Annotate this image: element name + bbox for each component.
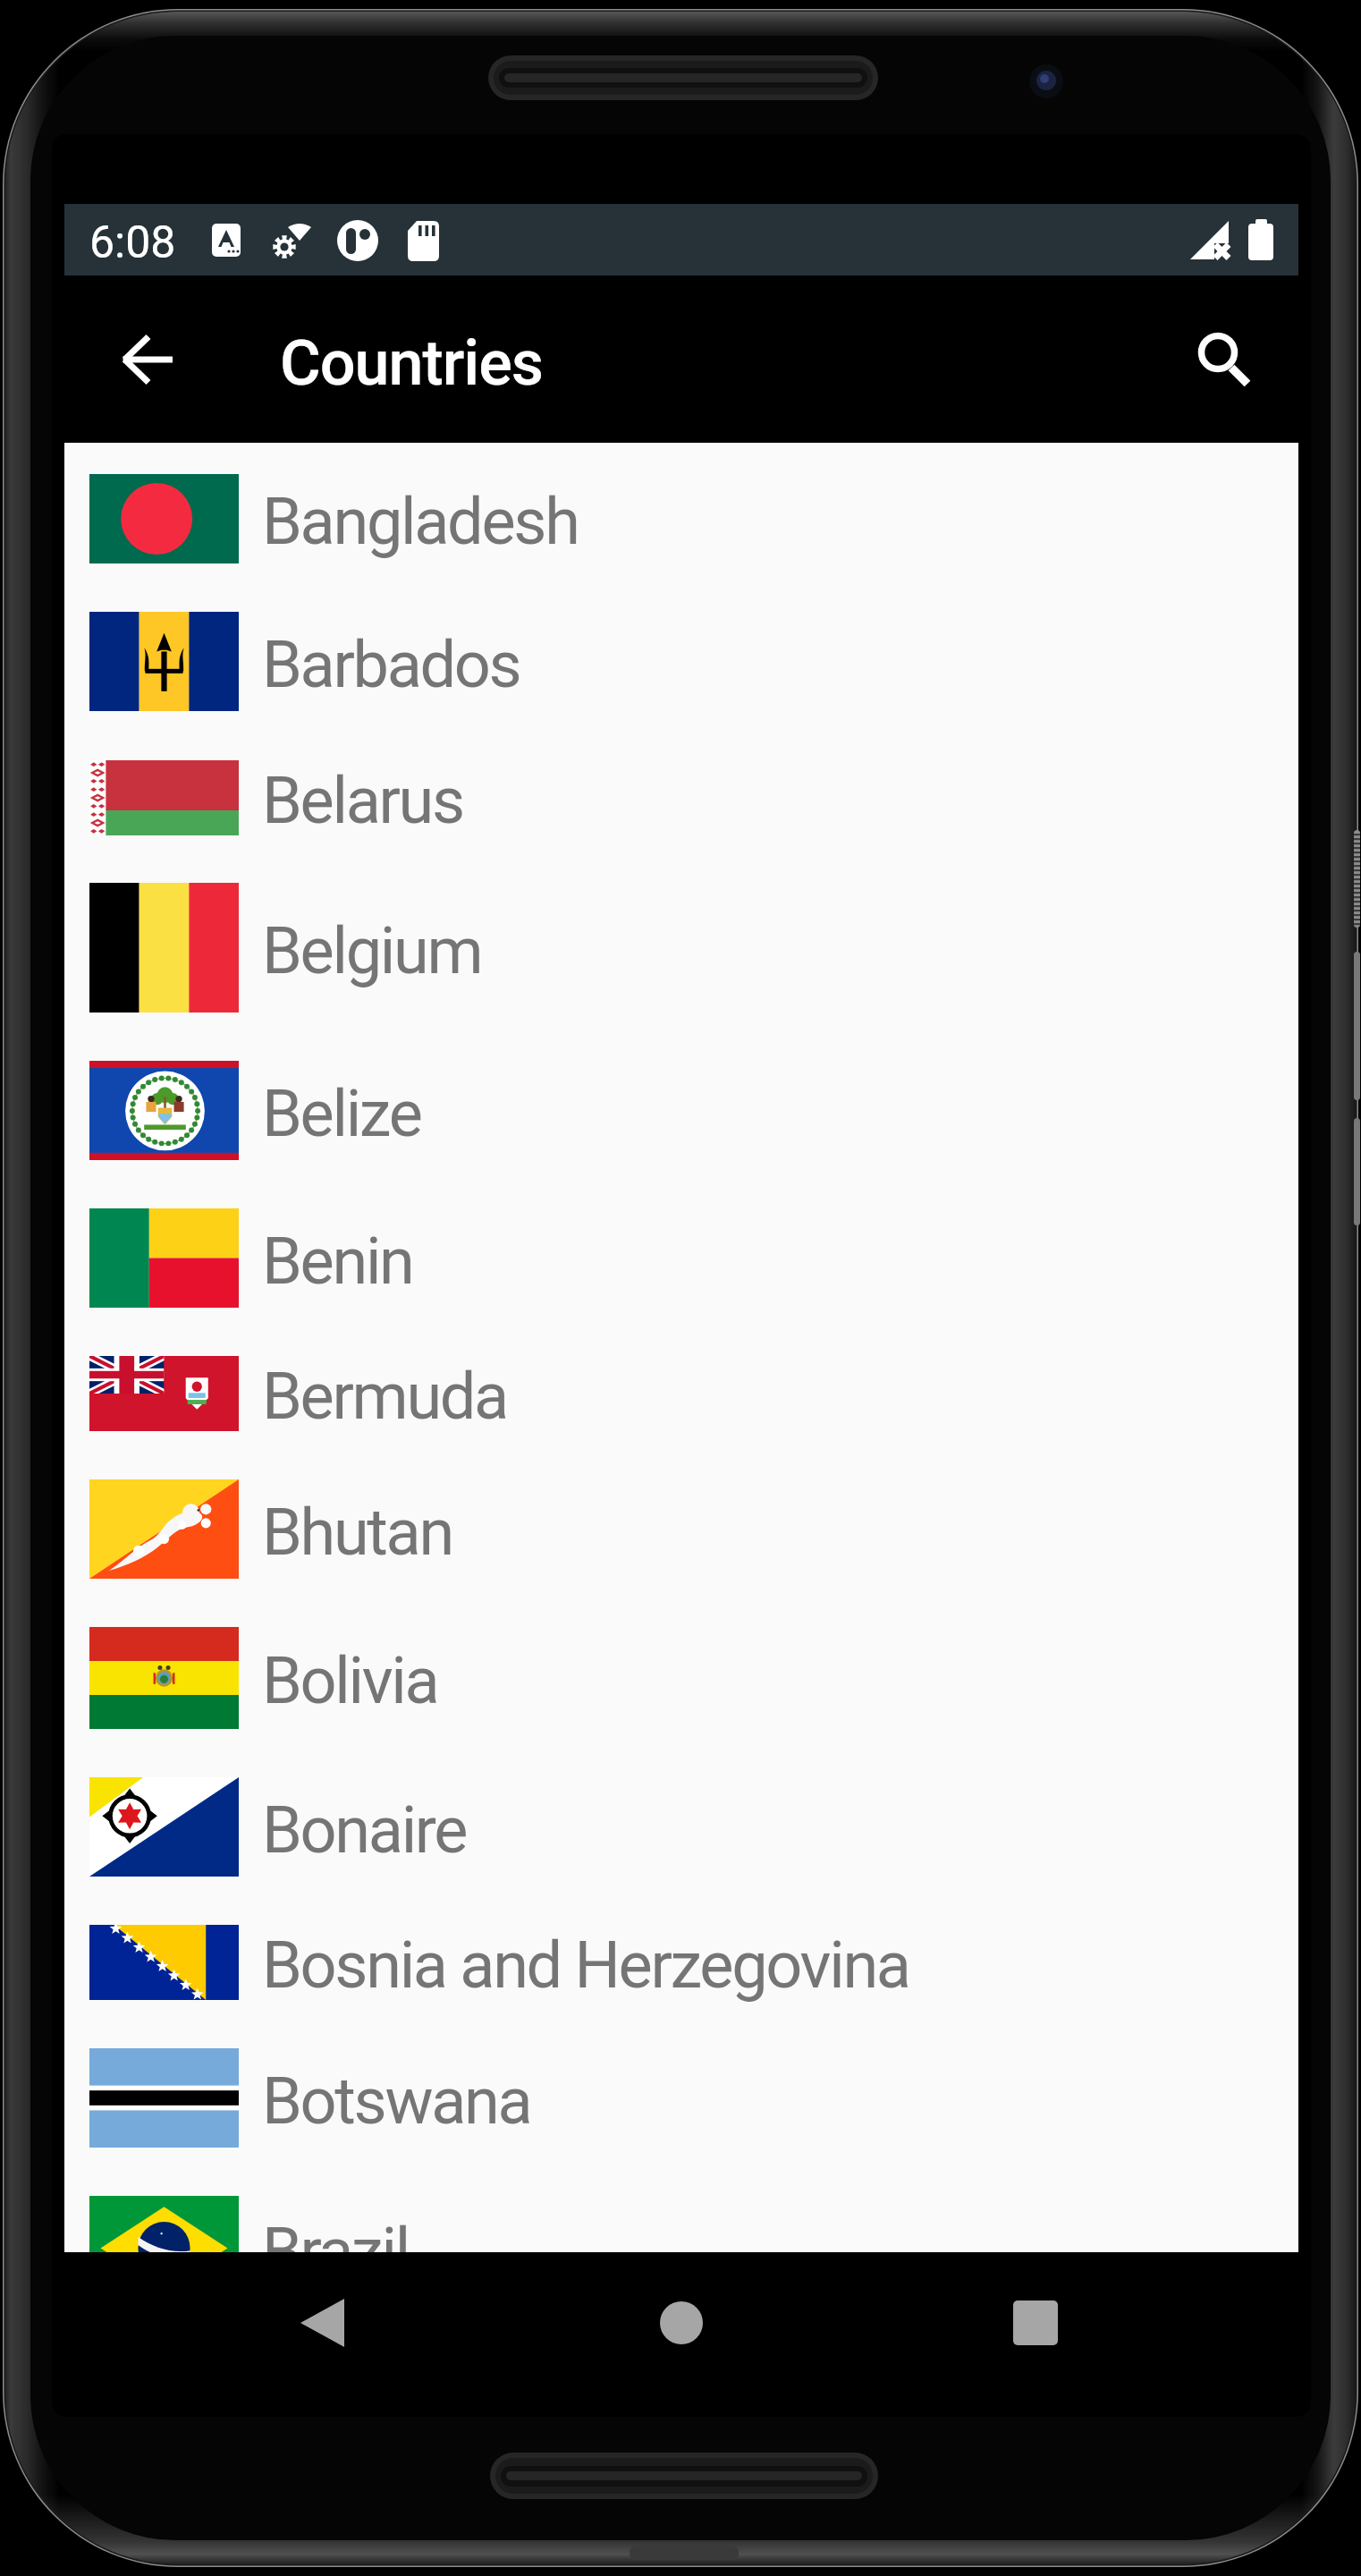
staticText: Botswana (262, 2063, 531, 2139)
button[interactable]: Belize (64, 1037, 1298, 1184)
button[interactable]: Recent apps (982, 2269, 1089, 2377)
button[interactable]: Bolivia (64, 1603, 1298, 1753)
button[interactable]: Bangladesh (64, 450, 1298, 588)
button[interactable]: Belarus (64, 736, 1298, 860)
staticText: Belgium (262, 913, 482, 988)
button[interactable]: Barbados (64, 588, 1298, 735)
button[interactable]: Bermuda (64, 1332, 1298, 1455)
button[interactable]: Navigate up (90, 302, 205, 417)
staticText: Bosnia and Herzegovina (262, 1928, 909, 2003)
button[interactable]: Botswana (64, 2024, 1298, 2172)
staticText: Bolivia (262, 1643, 438, 1718)
staticText: Bonaire (262, 1792, 467, 1868)
staticText: Countries (280, 326, 543, 400)
button[interactable]: Bosnia and Herzegovina (64, 1901, 1298, 2024)
button[interactable]: Search (1164, 302, 1279, 417)
button[interactable]: Home (628, 2269, 735, 2377)
staticText: Bangladesh (262, 484, 579, 559)
staticText: Benin (262, 1224, 413, 1299)
button[interactable]: Bhutan (64, 1455, 1298, 1603)
staticText: Belize (262, 1076, 421, 1151)
staticText: Belarus (262, 763, 463, 838)
button[interactable]: Belgium (64, 859, 1298, 1037)
staticText: 6:08 (89, 216, 176, 269)
staticText: Bermuda (262, 1359, 507, 1434)
button[interactable]: Brazil (64, 2172, 1298, 2252)
staticText: Brazil (262, 2214, 409, 2252)
button[interactable]: Benin (64, 1184, 1298, 1332)
staticText: Barbados (262, 627, 520, 702)
button[interactable]: Bonaire (64, 1753, 1298, 1901)
staticText: Bhutan (262, 1495, 452, 1570)
button[interactable]: Back (268, 2269, 376, 2377)
